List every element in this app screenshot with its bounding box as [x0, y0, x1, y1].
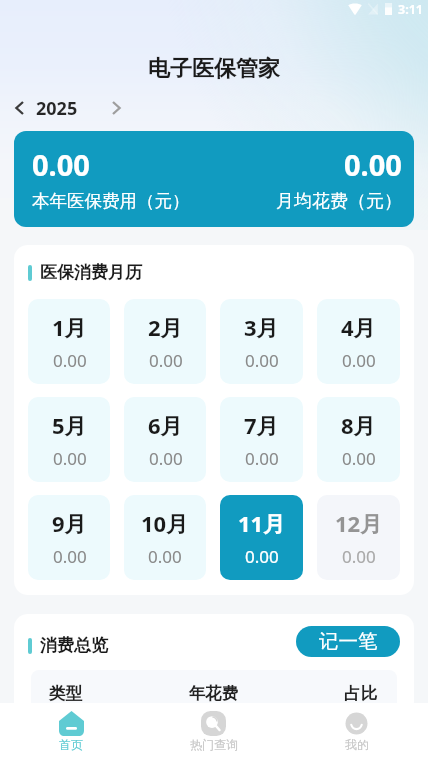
- staticText: 0.00: [53, 447, 87, 470]
- button[interactable]: 0.00: [14, 131, 414, 227]
- staticText: 2月: [148, 312, 183, 342]
- staticText: 0.00: [53, 545, 87, 568]
- staticText: 月均花费（元）: [276, 190, 402, 213]
- button[interactable]: 1月: [28, 299, 110, 384]
- staticText: 0.00: [32, 145, 90, 184]
- staticText: 0.00: [245, 447, 279, 470]
- staticText: 8月: [341, 410, 376, 440]
- staticText: 9月: [52, 508, 87, 538]
- staticText: 年花费: [159, 683, 268, 704]
- staticText: 3月: [244, 312, 279, 342]
- staticText: 0.00: [53, 349, 87, 372]
- staticText: 记一笔: [319, 629, 378, 654]
- button[interactable]: 5月: [28, 397, 110, 482]
- button[interactable]: 3月: [220, 299, 303, 384]
- staticText: 12月: [335, 508, 383, 538]
- staticText: 本年医保费用（元）: [32, 190, 190, 212]
- staticText: 4月: [341, 312, 376, 342]
- staticText: 我的: [345, 737, 369, 752]
- button[interactable]: Previous year: [5, 94, 33, 122]
- button[interactable]: 7月: [220, 397, 303, 482]
- button[interactable]: 10月: [124, 495, 206, 580]
- staticText: 0.00: [344, 145, 402, 184]
- staticText: 0.00: [245, 545, 279, 568]
- button[interactable]: 4月: [317, 299, 400, 384]
- staticText: 0.00: [149, 447, 183, 470]
- staticText: 0.00: [342, 545, 376, 568]
- button[interactable]: 我的: [285, 703, 428, 762]
- button[interactable]: Next year: [102, 94, 130, 122]
- staticText: 0.00: [149, 349, 183, 372]
- staticText: 消费总览: [40, 635, 108, 656]
- button[interactable]: 2月: [124, 299, 206, 384]
- staticText: 3:11: [398, 1, 423, 18]
- staticText: 类型: [49, 683, 159, 704]
- staticText: 0.00: [148, 545, 182, 568]
- staticText: 5月: [52, 410, 87, 440]
- staticText: 0.00: [342, 349, 376, 372]
- staticText: 医保消费月历: [40, 262, 142, 283]
- staticText: 2025: [36, 96, 78, 121]
- staticText: 10月: [141, 508, 189, 538]
- button[interactable]: 记一笔: [296, 626, 400, 657]
- button[interactable]: 8月: [317, 397, 400, 482]
- staticText: 0.00: [342, 447, 376, 470]
- staticText: 6月: [148, 410, 183, 440]
- staticText: 0.00: [245, 349, 279, 372]
- button[interactable]: 热门查询: [142, 703, 285, 762]
- staticText: 首页: [59, 737, 83, 752]
- staticText: 电子医保管家: [148, 55, 280, 83]
- staticText: 1月: [52, 312, 87, 342]
- button[interactable]: 9月: [28, 495, 110, 580]
- staticText: 占比: [268, 683, 377, 704]
- button[interactable]: 11月: [220, 495, 303, 580]
- staticText: 7月: [244, 410, 279, 440]
- button[interactable]: 首页: [0, 703, 142, 762]
- staticText: 热门查询: [190, 737, 238, 752]
- staticText: 11月: [238, 508, 286, 538]
- button[interactable]: 6月: [124, 397, 206, 482]
- button[interactable]: 12月: [317, 495, 400, 580]
